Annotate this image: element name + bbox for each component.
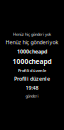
staticText: 1000cheapd	[17, 48, 47, 55]
staticText: Profili düzenle	[18, 68, 46, 73]
staticText: Henüz hiç gönderi yok	[13, 31, 51, 37]
staticText: Henüz hiç gönderi yok	[5, 39, 58, 46]
staticText: 19:48	[25, 84, 38, 91]
staticText: gönderi	[25, 93, 38, 98]
staticText: Profili düzenle	[14, 75, 50, 82]
staticText: 1000cheapd	[12, 57, 51, 66]
